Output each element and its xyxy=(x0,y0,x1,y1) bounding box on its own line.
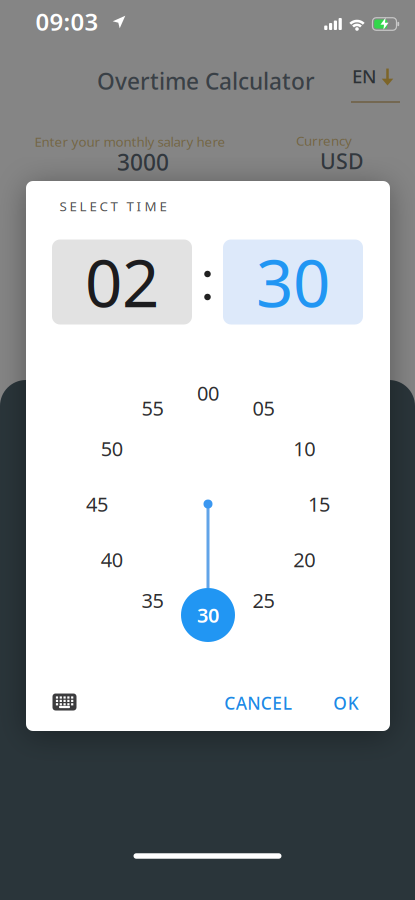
button[interactable]: Hours xyxy=(52,239,192,325)
staticText: 30 xyxy=(197,602,219,628)
staticText: 35 xyxy=(141,587,163,613)
staticText: 30 xyxy=(256,239,330,325)
button[interactable]: 00 xyxy=(191,376,225,410)
staticText: CANCEL xyxy=(224,691,292,714)
button[interactable]: 55 xyxy=(135,391,169,425)
button[interactable]: 05 xyxy=(246,391,280,425)
button[interactable]: 10 xyxy=(287,431,321,465)
button[interactable]: Language xyxy=(337,54,407,114)
staticText: 05 xyxy=(252,395,274,421)
button[interactable]: 50 xyxy=(95,431,129,465)
button[interactable]: Currency xyxy=(285,127,375,173)
staticText: 30 xyxy=(197,602,219,628)
staticText: 00 xyxy=(197,380,219,406)
staticText: 45 xyxy=(86,491,108,517)
staticText: Currency xyxy=(296,132,352,149)
staticText: Enter your monthly salary here xyxy=(34,133,225,150)
button[interactable]: CANCEL xyxy=(216,683,300,722)
staticText: 40 xyxy=(101,546,123,573)
button[interactable]: 15 xyxy=(302,487,336,521)
staticText: EN xyxy=(352,64,376,88)
staticText: 15 xyxy=(308,491,330,517)
button[interactable]: 30 xyxy=(191,598,225,632)
staticText: OK xyxy=(333,691,359,714)
button[interactable]: Keyboard input xyxy=(52,693,76,710)
button[interactable]: 35 xyxy=(135,583,169,617)
button[interactable]: Monthly salary xyxy=(20,127,240,173)
staticText: 09:03 xyxy=(35,6,98,37)
staticText: 20 xyxy=(293,546,315,573)
button[interactable]: Minutes xyxy=(223,239,363,325)
staticText: 10 xyxy=(293,435,315,462)
staticText: 25 xyxy=(252,587,274,613)
staticText: 3000 xyxy=(117,147,169,177)
button[interactable]: 45 xyxy=(80,487,114,521)
button[interactable]: 25 xyxy=(246,583,280,617)
button[interactable]: OK xyxy=(325,683,367,722)
button[interactable]: 30 xyxy=(181,588,235,642)
staticText: 02 xyxy=(85,239,159,325)
staticText: Overtime Calculator xyxy=(97,66,315,96)
button[interactable]: 40 xyxy=(95,542,129,576)
staticText: S E L E C T T I M E xyxy=(59,197,166,215)
button[interactable]: 20 xyxy=(287,542,321,576)
staticText: 55 xyxy=(141,395,163,421)
staticText: 50 xyxy=(101,435,123,462)
staticText: USD xyxy=(320,147,364,175)
